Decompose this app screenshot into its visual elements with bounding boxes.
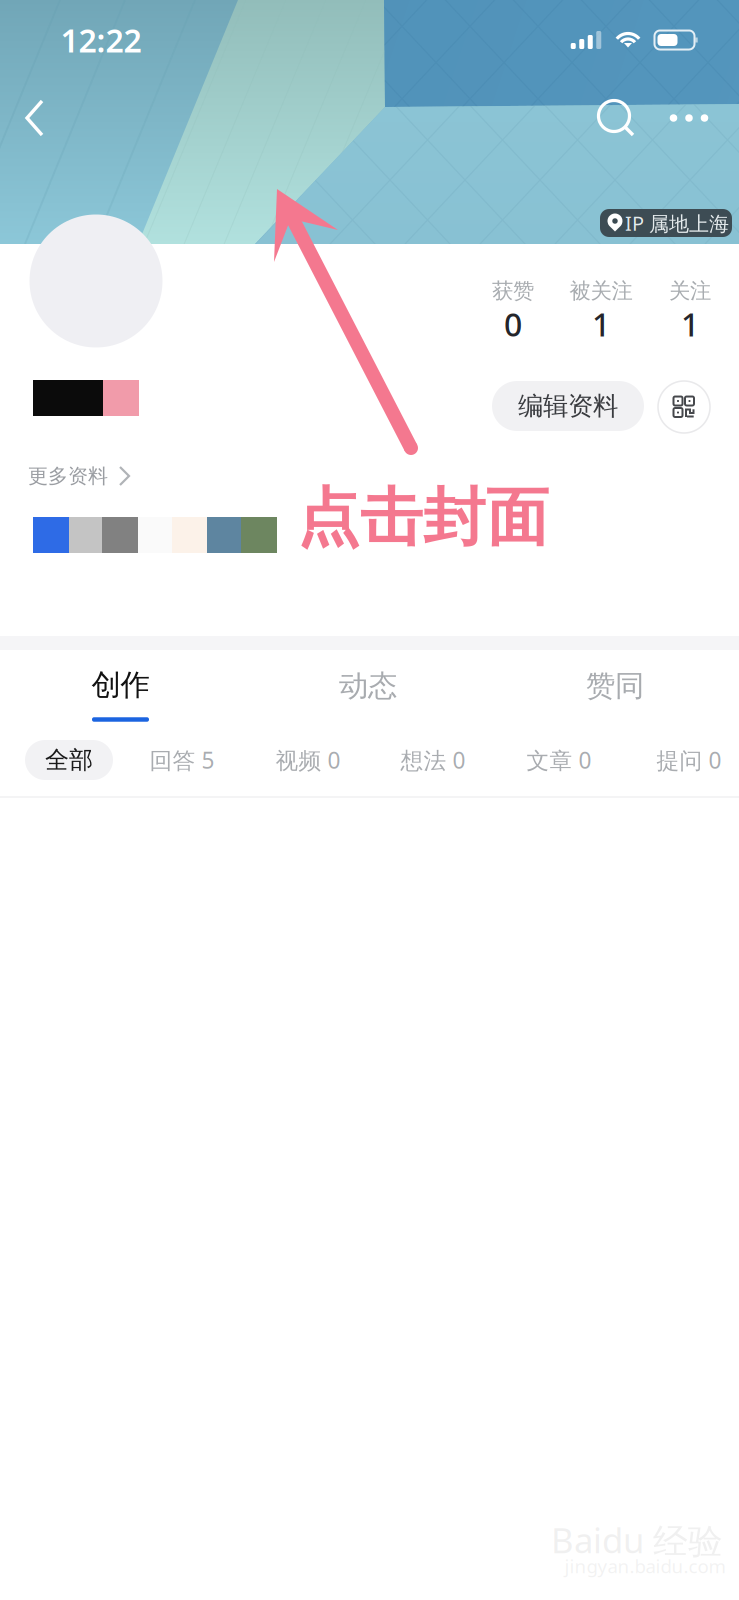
staticText: 想法 0: [400, 745, 465, 775]
staticText: 0: [504, 303, 522, 345]
staticText: IP 属地上海: [625, 210, 729, 236]
staticText: 获赞: [492, 278, 534, 304]
button[interactable]: Back: [10, 90, 66, 146]
button[interactable]: 创作: [55, 665, 185, 735]
button[interactable]: 回答 5: [127, 740, 237, 780]
staticText: 12:22: [60, 19, 141, 61]
button[interactable]: 赞同: [550, 655, 680, 717]
staticText: Baidu 经验: [551, 1517, 723, 1563]
staticText: 回答 5: [149, 745, 214, 775]
button[interactable]: 被关注: [557, 277, 645, 343]
button[interactable]: 想法 0: [378, 740, 488, 780]
button[interactable]: 全部: [25, 740, 113, 780]
staticText: 点击封面: [297, 479, 549, 556]
staticText: 被关注: [569, 278, 632, 304]
button[interactable]: QR code: [658, 381, 710, 433]
staticText: 更多资料: [28, 464, 108, 488]
button[interactable]: 视频 0: [253, 740, 363, 780]
button[interactable]: Search: [589, 92, 645, 148]
staticText: 全部: [45, 745, 93, 775]
staticText: 1: [681, 303, 699, 345]
staticText: 文章 0: [526, 745, 591, 775]
staticText: 赞同: [586, 668, 644, 704]
staticText: 视频 0: [275, 745, 340, 775]
button[interactable]: 获赞: [469, 277, 557, 343]
button[interactable]: 动态: [303, 655, 433, 717]
staticText: 创作: [91, 667, 149, 703]
button[interactable]: 文章 0: [504, 740, 614, 780]
staticText: 提问 0: [656, 745, 721, 775]
staticText: jingyan.baidu.com: [564, 1554, 725, 1578]
button[interactable]: More: [658, 92, 720, 144]
button[interactable]: 更多资料: [28, 458, 152, 494]
staticText: 动态: [339, 668, 397, 704]
staticText: 关注: [669, 278, 711, 304]
button[interactable]: 关注: [646, 277, 734, 343]
button[interactable]: 编辑资料: [492, 381, 644, 431]
button[interactable]: 提问 0: [634, 740, 739, 780]
staticText: 1: [592, 303, 610, 345]
staticText: 编辑资料: [518, 390, 618, 421]
